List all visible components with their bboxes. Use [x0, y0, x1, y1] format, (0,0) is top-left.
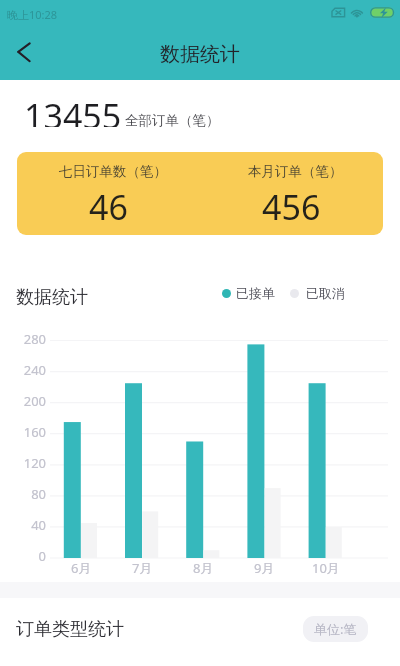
- staticText: 8月: [193, 559, 214, 577]
- staticText: 七日订单数（笔）: [59, 163, 167, 180]
- staticText: 数据统计: [16, 286, 88, 309]
- staticText: 全部订单（笔）: [125, 112, 220, 129]
- staticText: 0: [2, 547, 46, 565]
- staticText: 订单类型统计: [16, 618, 124, 641]
- staticText: 已接单: [236, 285, 275, 301]
- staticText: 9月: [254, 559, 275, 577]
- staticText: 120: [2, 454, 46, 472]
- button[interactable]: Back: [0, 28, 48, 80]
- staticText: 晚上10:28: [7, 7, 58, 22]
- staticText: 240: [2, 361, 46, 379]
- staticText: 456: [262, 184, 321, 230]
- staticText: 已取消: [306, 285, 345, 301]
- staticText: 46: [89, 184, 128, 230]
- staticText: 13455: [24, 93, 122, 127]
- staticText: 280: [2, 330, 46, 348]
- staticText: 单位:笔: [314, 620, 357, 638]
- staticText: 160: [2, 423, 46, 441]
- staticText: 200: [2, 392, 46, 410]
- staticText: 10月: [312, 559, 340, 577]
- staticText: 80: [2, 485, 46, 503]
- staticText: 40: [2, 516, 46, 534]
- button[interactable]: 单位:笔: [303, 616, 368, 642]
- staticText: 7月: [132, 559, 153, 577]
- staticText: 本月订单（笔）: [248, 163, 343, 180]
- staticText: 数据统计: [160, 42, 240, 67]
- staticText: 6月: [71, 559, 92, 577]
